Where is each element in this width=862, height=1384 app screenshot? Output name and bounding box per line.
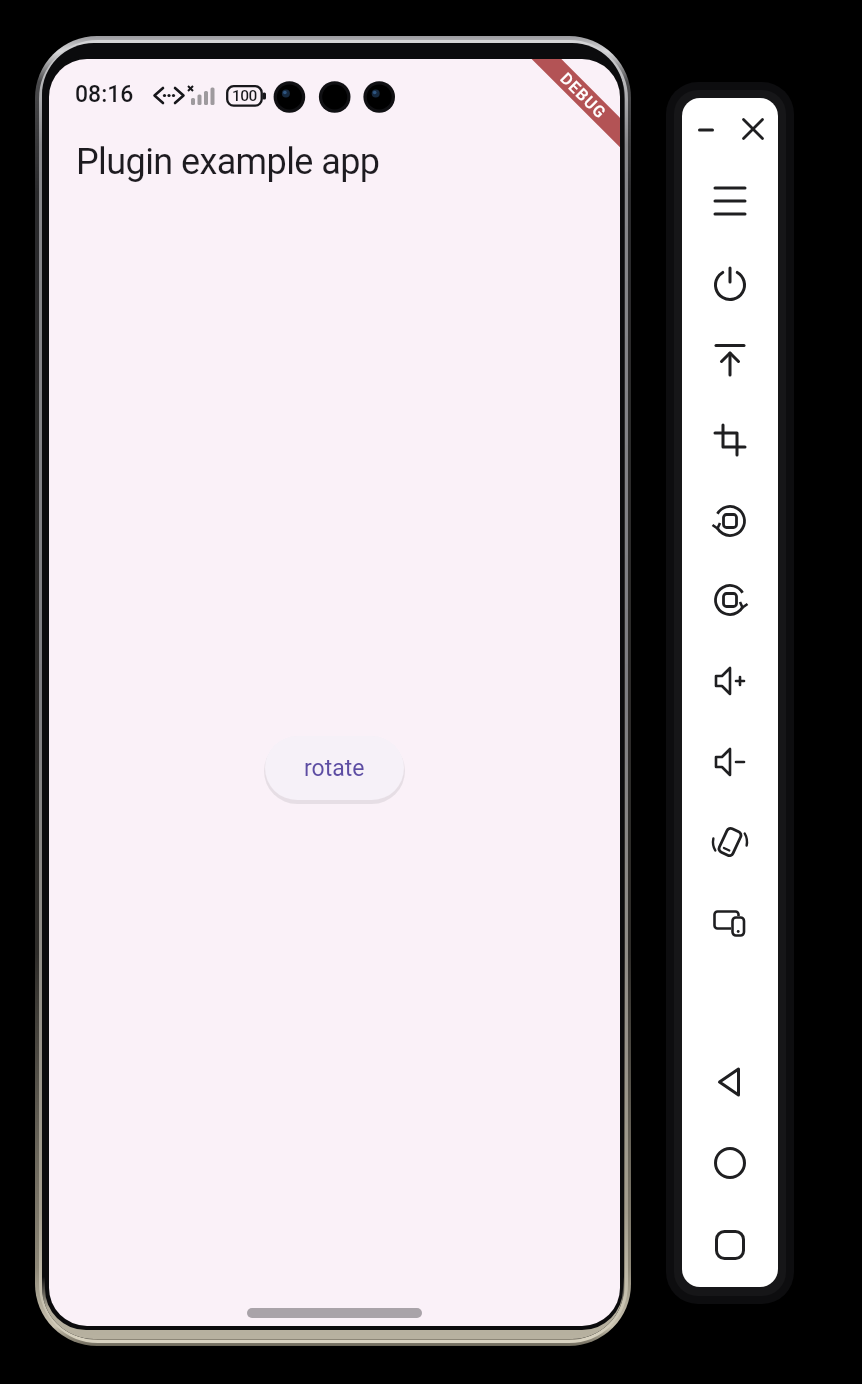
- button[interactable]: [706, 818, 754, 866]
- staticText: 100: [232, 87, 257, 105]
- button[interactable]: [706, 738, 754, 786]
- staticText: Plugin example app: [76, 141, 380, 183]
- button[interactable]: [706, 261, 754, 309]
- button[interactable]: [706, 657, 754, 705]
- staticText: DEBUG: [556, 69, 610, 123]
- button[interactable]: [729, 105, 777, 153]
- button[interactable]: [706, 416, 754, 464]
- button[interactable]: rotate: [265, 736, 404, 800]
- button[interactable]: [706, 898, 754, 946]
- staticText: rotate: [304, 755, 365, 782]
- button[interactable]: [706, 1221, 754, 1269]
- button[interactable]: [706, 497, 754, 545]
- button[interactable]: [706, 177, 754, 225]
- button[interactable]: [706, 336, 754, 384]
- staticText: 08:16: [75, 81, 134, 107]
- button[interactable]: [706, 576, 754, 624]
- button[interactable]: [682, 106, 730, 154]
- button[interactable]: [706, 1139, 754, 1187]
- button[interactable]: [706, 1058, 754, 1106]
